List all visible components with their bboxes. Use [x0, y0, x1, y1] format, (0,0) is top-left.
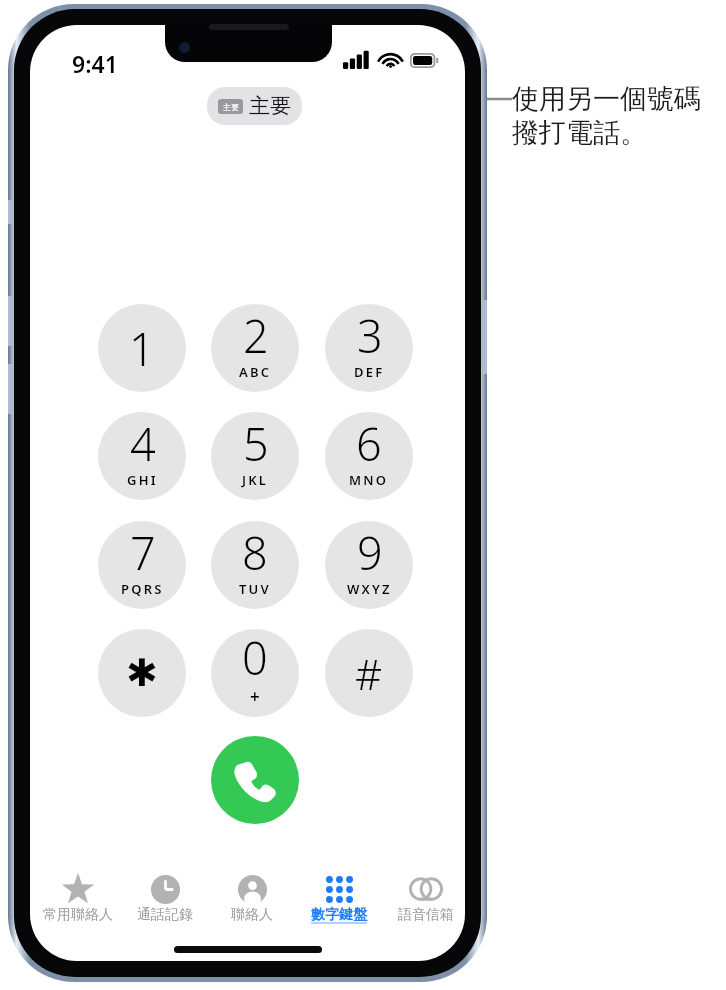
- staticText: 6: [356, 413, 382, 474]
- staticText: 主要: [249, 93, 291, 119]
- staticText: 數字鍵盤: [311, 906, 367, 924]
- button[interactable]: 4: [98, 412, 186, 500]
- button[interactable]: 5: [211, 412, 299, 500]
- staticText: TUV: [239, 580, 271, 598]
- button[interactable]: #: [325, 629, 413, 717]
- button[interactable]: 通話記錄: [121, 872, 209, 936]
- staticText: WXYZ: [347, 580, 392, 598]
- staticText: 9:41: [72, 48, 118, 79]
- staticText: 5: [243, 413, 269, 474]
- staticText: DEF: [354, 363, 385, 381]
- staticText: 3: [357, 305, 383, 366]
- button[interactable]: 0: [211, 629, 299, 717]
- staticText: MNO: [349, 471, 389, 489]
- staticText: GHI: [127, 471, 158, 489]
- staticText: 撥打電話。: [512, 116, 647, 150]
- button[interactable]: 6: [325, 412, 413, 500]
- button[interactable]: 9: [325, 521, 413, 609]
- staticText: 語音信箱: [398, 906, 454, 924]
- staticText: JKL: [242, 471, 269, 489]
- button[interactable]: 8: [211, 521, 299, 609]
- staticText: 常用聯絡人: [43, 906, 113, 924]
- staticText: +: [250, 685, 260, 708]
- button[interactable]: 1: [98, 304, 186, 392]
- button[interactable]: 2: [211, 304, 299, 392]
- button[interactable]: 聯絡人: [208, 872, 296, 936]
- button[interactable]: 數字鍵盤: [295, 872, 383, 936]
- staticText: 0: [242, 629, 268, 688]
- staticText: 4: [130, 413, 156, 474]
- staticText: #: [355, 645, 383, 702]
- staticText: 通話記錄: [137, 906, 193, 924]
- staticText: 2: [243, 305, 269, 366]
- button[interactable]: 3: [325, 304, 413, 392]
- staticText: ✱: [126, 651, 158, 695]
- staticText: 使用另一個號碼: [512, 82, 701, 116]
- button[interactable]: 常用聯絡人: [34, 872, 122, 936]
- button[interactable]: 主要: [207, 87, 302, 125]
- button[interactable]: 語音信箱: [382, 872, 465, 936]
- staticText: 9: [357, 522, 383, 583]
- staticText: 主要: [223, 102, 239, 112]
- button[interactable]: 7: [98, 521, 186, 609]
- button[interactable]: 撥打電話: [211, 736, 299, 824]
- staticText: ABC: [239, 363, 272, 381]
- staticText: 1: [129, 318, 155, 379]
- staticText: 8: [242, 522, 268, 583]
- staticText: 聯絡人: [231, 906, 273, 924]
- button[interactable]: ✱: [98, 629, 186, 717]
- staticText: 7: [130, 522, 156, 583]
- staticText: PQRS: [121, 580, 164, 598]
